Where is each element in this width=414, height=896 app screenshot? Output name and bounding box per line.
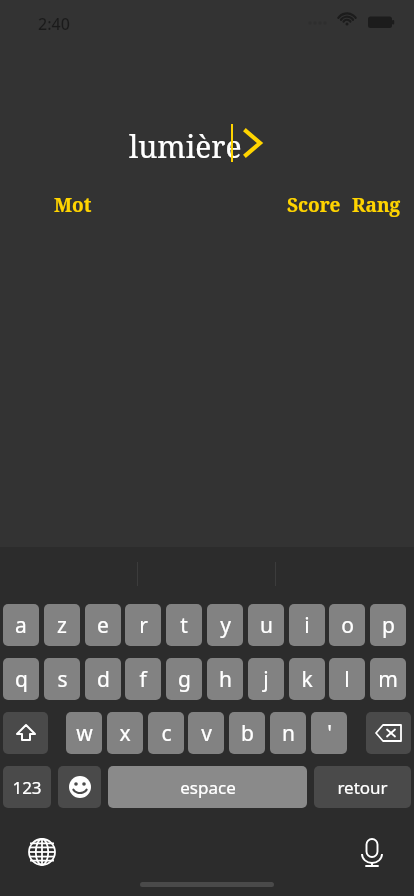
staticText: lumière [129,126,242,167]
button[interactable]: q [3,658,39,700]
button[interactable]: o [329,604,365,646]
staticText: 123 [12,776,42,799]
button[interactable]: c [148,712,184,754]
staticText: o [341,611,354,640]
button[interactable]: m [370,658,406,700]
button[interactable]: a [3,604,39,646]
staticText: f [139,665,147,694]
button[interactable]: espace [108,766,307,808]
staticText: s [57,665,68,694]
staticText: v [201,719,212,748]
staticText: l [344,665,350,694]
staticText: z [57,611,67,640]
staticText: d [97,665,110,694]
button[interactable]: Score [287,192,341,218]
button[interactable]: v [188,712,224,754]
staticText: m [378,665,398,694]
button[interactable]: e [85,604,121,646]
staticText: u [260,611,273,640]
button[interactable]: Shift [3,712,48,754]
staticText: r [139,611,148,640]
button[interactable]: b [229,712,265,754]
button[interactable]: h [207,658,243,700]
staticText: i [304,611,310,640]
button[interactable]: l [329,658,365,700]
button[interactable]: p [370,604,406,646]
button[interactable]: Rang [352,192,401,218]
staticText: e [97,611,109,640]
button[interactable]: Change keyboard [24,834,60,870]
button[interactable]: retour [314,766,411,808]
staticText: j [263,665,269,694]
button[interactable]: r [125,604,161,646]
staticText: k [301,665,313,694]
button[interactable]: Dictation [354,834,390,870]
button[interactable]: 123 [3,766,51,808]
staticText: espace [180,776,236,799]
staticText: q [15,665,28,694]
button[interactable]: Submit [240,124,270,162]
button[interactable]: d [85,658,121,700]
button[interactable]: Mot [54,192,92,218]
staticText: retour [337,776,388,799]
button[interactable]: Emoji [58,766,101,808]
staticText: n [282,719,295,748]
staticText: w [76,719,93,748]
staticText: y [220,611,231,640]
staticText: b [241,719,254,748]
button[interactable]: u [248,604,284,646]
button[interactable]: k [289,658,325,700]
button[interactable]: f [125,658,161,700]
staticText: g [178,665,191,694]
staticText: h [219,665,232,694]
staticText: c [161,719,172,748]
button[interactable]: t [166,604,202,646]
button[interactable]: g [166,658,202,700]
staticText: 2:40 [38,13,70,35]
button[interactable]: w [66,712,102,754]
staticText: a [15,611,27,640]
button[interactable]: j [248,658,284,700]
staticText: ' [327,719,332,748]
button[interactable]: i [289,604,325,646]
staticText: x [119,719,131,748]
button[interactable]: y [207,604,243,646]
button[interactable]: x [107,712,143,754]
button[interactable]: s [44,658,80,700]
button[interactable]: Backspace [366,712,411,754]
staticText: p [382,611,395,640]
button[interactable]: z [44,604,80,646]
staticText: t [180,611,188,640]
button[interactable]: n [270,712,306,754]
button[interactable]: ' [311,712,347,754]
